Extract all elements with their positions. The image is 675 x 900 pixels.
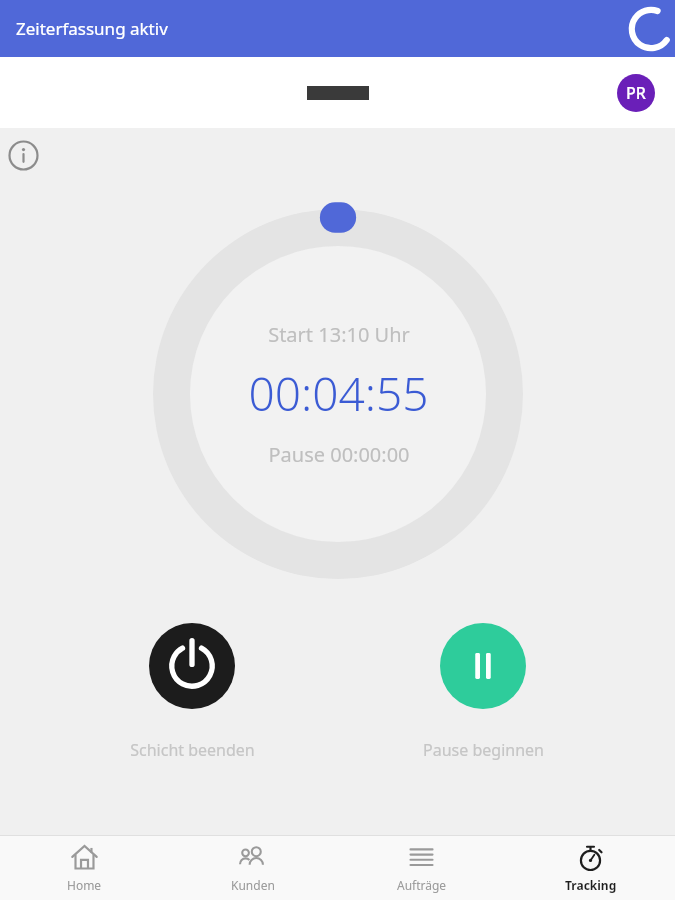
staticText: Aufträge (397, 877, 447, 893)
button[interactable]: Tracking (506, 836, 675, 900)
button[interactable]: Loading (627, 5, 675, 53)
staticText: Zeiterfassung aktiv (16, 17, 168, 40)
staticText: Start 13:10 Uhr (268, 321, 410, 348)
staticText: Home (67, 877, 102, 893)
button[interactable]: Home (0, 836, 168, 900)
button[interactable]: Info (8, 140, 39, 171)
staticText: Tracking (565, 877, 617, 893)
staticText: 00:04:55 (248, 362, 429, 425)
button[interactable]: Aufträge (337, 836, 506, 900)
staticText: Schicht beenden (130, 739, 255, 761)
button[interactable]: End shift (92, 623, 292, 761)
button[interactable]: Start pause (383, 623, 583, 761)
button[interactable]: PR (617, 74, 655, 112)
staticText: Kunden (231, 877, 275, 893)
staticText: PR (626, 82, 646, 104)
button[interactable]: Kunden (168, 836, 337, 900)
staticText: Pause 00:00:00 (268, 441, 410, 468)
staticText: Pause beginnen (423, 739, 544, 761)
